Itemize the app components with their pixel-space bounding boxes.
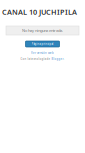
staticText: Página principal bbox=[31, 42, 53, 46]
button[interactable]: Página principal bbox=[25, 41, 59, 47]
staticText: CANAL 10 JUCHIPILA bbox=[2, 7, 77, 17]
staticText: Con la tecnología de bbox=[20, 57, 51, 61]
staticText: Ver versión web bbox=[31, 51, 54, 55]
button[interactable]: Ver versión web bbox=[31, 51, 54, 55]
staticText: No hay ninguna entrada. bbox=[22, 28, 63, 33]
staticText: Blogger bbox=[51, 57, 63, 61]
